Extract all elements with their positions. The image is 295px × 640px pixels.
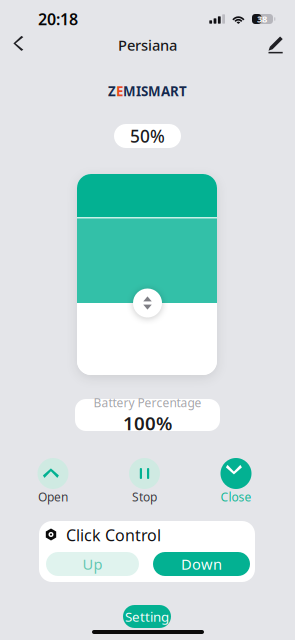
staticText: E <box>116 82 123 100</box>
button[interactable]: Back <box>4 30 34 60</box>
button[interactable]: 50% <box>114 124 181 148</box>
staticText: 38 <box>257 13 267 25</box>
staticText: 100% <box>123 411 172 435</box>
staticText: Setting <box>125 608 169 625</box>
button[interactable]: Close <box>207 458 265 505</box>
staticText: Down <box>181 554 222 574</box>
button[interactable]: Edit <box>261 30 291 60</box>
staticText: 20:18 <box>38 8 78 30</box>
staticText: Stop <box>132 489 157 505</box>
staticText: Z <box>108 82 116 100</box>
staticText: Persiana <box>118 35 177 55</box>
button[interactable]: Up <box>46 552 139 576</box>
staticText: Up <box>82 554 102 574</box>
button[interactable]: Stop <box>115 458 173 505</box>
staticText: Click Control <box>66 524 161 546</box>
staticText: Close <box>220 489 251 505</box>
staticText: 50% <box>130 124 165 147</box>
staticText: MISMART <box>123 82 187 100</box>
button[interactable]: Setting <box>123 605 171 628</box>
staticText: Open <box>38 489 68 505</box>
button[interactable]: Down <box>153 552 250 576</box>
staticText: Battery Percentage <box>93 395 201 410</box>
button[interactable]: Open <box>24 458 82 505</box>
